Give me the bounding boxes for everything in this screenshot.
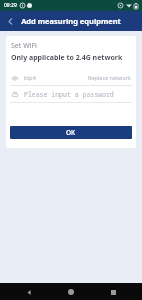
button[interactable]: Please input a password — [6, 86, 136, 102]
staticText: 09:29 — [4, 2, 17, 9]
staticText: OK — [66, 128, 76, 137]
button[interactable]: OK — [10, 126, 132, 139]
staticText: Add measuring equipment — [21, 16, 121, 26]
button[interactable]: Home — [64, 285, 78, 299]
staticText: Set WiFi — [11, 41, 37, 51]
button[interactable]: Recent apps — [106, 285, 120, 299]
staticText: klp4 — [24, 74, 36, 82]
staticText: Replace network — [88, 74, 131, 81]
staticText: Please input a password — [24, 90, 114, 99]
button[interactable]: Back — [22, 285, 36, 299]
button[interactable]: Back — [0, 11, 20, 31]
button[interactable]: klp4 — [6, 70, 136, 85]
staticText: Only applicable to 2.4G network — [11, 53, 123, 63]
